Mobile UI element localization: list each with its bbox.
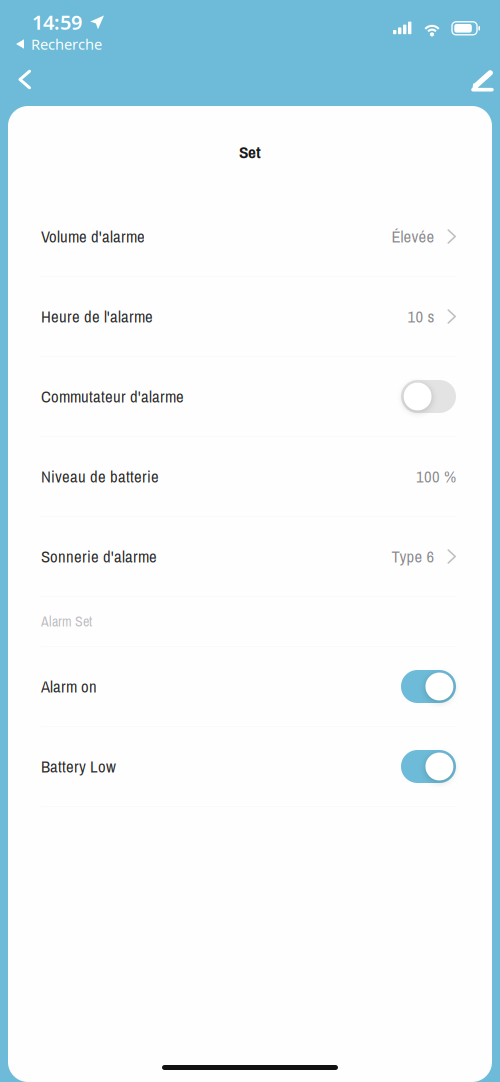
staticText: Commutateur d'alarme <box>41 385 184 408</box>
staticText: Recherche <box>31 34 102 54</box>
button[interactable]: Back <box>0 60 45 103</box>
button[interactable]: Commutateur d'alarme <box>8 357 492 437</box>
staticText: 10 s <box>407 305 434 328</box>
staticText: 14:59 <box>32 8 82 36</box>
staticText: Alarm on <box>41 675 97 698</box>
button[interactable]: Edit <box>457 59 500 103</box>
staticText: Set <box>239 140 261 164</box>
staticText: Sonnerie d'alarme <box>41 545 157 568</box>
staticText: 100 % <box>416 465 456 488</box>
staticText: Volume d'alarme <box>41 225 145 248</box>
staticText: Niveau de batterie <box>41 465 159 488</box>
button[interactable]: Sonnerie d'alarme <box>8 517 492 597</box>
button[interactable]: Alarm on <box>8 647 492 727</box>
staticText: Heure de l'alarme <box>41 305 153 328</box>
button[interactable]: Battery Low <box>8 727 492 807</box>
staticText: Type 6 <box>391 545 434 568</box>
staticText: Battery Low <box>41 755 116 778</box>
button[interactable]: Niveau de batterie <box>8 437 492 517</box>
staticText: Alarm Set <box>41 612 92 631</box>
staticText: Élevée <box>391 225 434 248</box>
button[interactable]: Heure de l'alarme <box>8 277 492 357</box>
button[interactable]: Volume d'alarme <box>8 197 492 277</box>
